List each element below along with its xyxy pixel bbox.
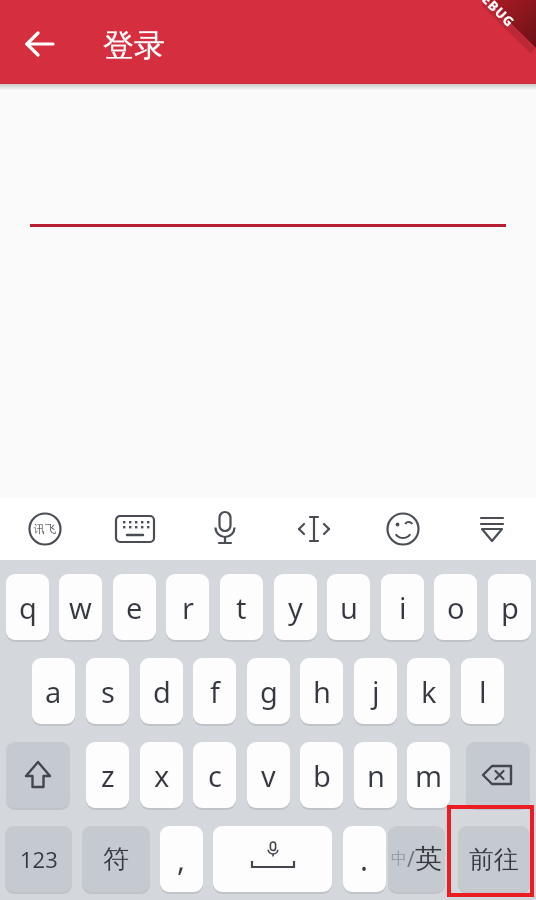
staticText: y (288, 588, 303, 627)
staticText: q (19, 588, 37, 627)
button[interactable]: c (193, 742, 236, 808)
staticText: u (340, 588, 358, 627)
button[interactable] (466, 742, 530, 808)
button[interactable]: n (354, 742, 397, 808)
button[interactable]: o (434, 574, 477, 640)
staticText: t (236, 588, 247, 627)
staticText: 中 (391, 849, 407, 869)
staticText: 讯飞 (34, 522, 56, 536)
staticText: DEBUG (471, 0, 519, 31)
staticText: k (421, 672, 437, 711)
staticText: 英 (415, 842, 442, 876)
staticText: p (501, 588, 519, 627)
button[interactable]: , (160, 826, 203, 892)
staticText: 符 (103, 843, 129, 876)
staticText: a (45, 672, 62, 711)
button[interactable]: j (354, 658, 397, 724)
staticText: i (399, 588, 407, 627)
button[interactable]: s (86, 658, 129, 724)
staticText: 123 (20, 844, 58, 874)
staticText: c (208, 756, 222, 795)
button[interactable]: a (32, 658, 75, 724)
button[interactable]: p (488, 574, 531, 640)
staticText: g (260, 672, 278, 711)
button[interactable]: . (343, 826, 386, 892)
staticText: l (479, 672, 487, 711)
button[interactable]: h (300, 658, 343, 724)
button[interactable]: k (407, 658, 450, 724)
button[interactable] (180, 498, 269, 560)
button[interactable] (12, 16, 68, 72)
button[interactable]: b (300, 742, 343, 808)
button[interactable]: r (166, 574, 209, 640)
staticText: h (313, 672, 331, 711)
button[interactable]: d (140, 658, 183, 724)
button[interactable]: g (247, 658, 290, 724)
staticText: s (101, 672, 115, 711)
button[interactable]: l (461, 658, 504, 724)
button[interactable]: 符 (82, 826, 150, 892)
staticText: d (153, 672, 171, 711)
button[interactable]: z (86, 742, 129, 808)
button[interactable] (269, 498, 358, 560)
staticText: n (367, 756, 385, 795)
button[interactable]: 123 (5, 826, 72, 892)
staticText: r (182, 588, 194, 627)
button[interactable]: u (327, 574, 370, 640)
button[interactable]: y (274, 574, 317, 640)
staticText: o (447, 588, 465, 627)
staticText: . (360, 839, 369, 880)
button[interactable]: v (247, 742, 290, 808)
button[interactable] (213, 826, 332, 892)
button[interactable] (447, 498, 536, 560)
staticText: f (210, 672, 220, 711)
staticText: e (126, 588, 143, 627)
staticText: 登录 (103, 26, 165, 65)
button[interactable] (358, 498, 447, 560)
button[interactable]: x (140, 742, 183, 808)
button[interactable]: e (113, 574, 156, 640)
button[interactable]: q (6, 574, 49, 640)
staticText: / (407, 845, 415, 874)
button[interactable]: 讯飞 (0, 498, 90, 560)
staticText: v (261, 756, 276, 795)
staticText: j (372, 672, 380, 711)
button[interactable] (6, 742, 70, 808)
button[interactable]: 前往 (458, 826, 530, 892)
staticText: b (313, 756, 331, 795)
staticText: m (415, 756, 443, 795)
staticText: x (154, 756, 170, 795)
staticText: 前往 (469, 844, 519, 875)
button[interactable]: w (59, 574, 102, 640)
staticText: z (101, 756, 115, 795)
button[interactable]: 中 (388, 826, 445, 892)
staticText: w (69, 588, 92, 627)
button[interactable]: t (220, 574, 263, 640)
staticText: , (177, 839, 186, 880)
button[interactable] (90, 498, 180, 560)
button[interactable]: f (193, 658, 236, 724)
button[interactable]: m (407, 742, 450, 808)
button[interactable]: i (381, 574, 424, 640)
